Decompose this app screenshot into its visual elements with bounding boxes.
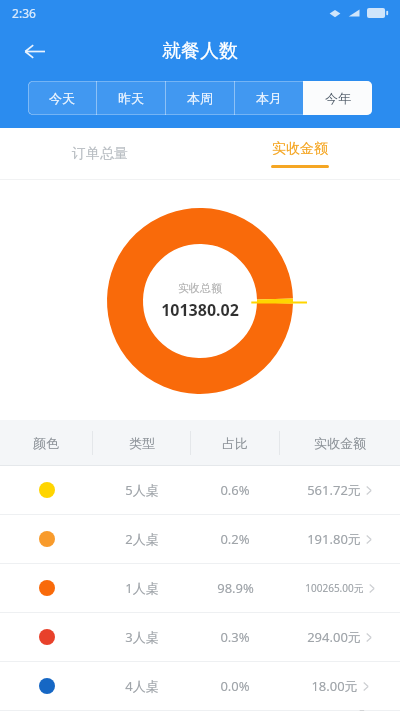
staticText: 3人桌 xyxy=(125,628,159,646)
button[interactable]: 2人桌 xyxy=(0,515,400,563)
button[interactable]: 今年 xyxy=(303,81,372,115)
staticText: 2:36 xyxy=(12,5,36,21)
staticText: 18.00元 xyxy=(311,677,358,695)
staticText: 2人桌 xyxy=(125,530,159,548)
staticText: 0.3% xyxy=(220,628,250,646)
button[interactable]: 3人桌 xyxy=(0,613,400,661)
button[interactable]: 实收金额 xyxy=(200,128,400,180)
staticText: 今天 xyxy=(49,90,75,106)
staticText: 类型 xyxy=(129,435,155,451)
staticText: 实收总额 xyxy=(178,281,222,295)
staticText: 0.0% xyxy=(220,677,250,695)
button[interactable]: Back xyxy=(16,33,52,69)
button[interactable]: 5人桌 xyxy=(0,466,400,514)
staticText: 昨天 xyxy=(118,90,144,106)
button[interactable]: 今天 xyxy=(28,81,96,115)
button[interactable]: 本月 xyxy=(234,81,303,115)
staticText: 561.72元 xyxy=(307,481,361,499)
staticText: 5人桌 xyxy=(125,481,159,499)
staticText: 就餐人数 xyxy=(162,39,238,63)
button[interactable]: 1人桌 xyxy=(0,564,400,612)
staticText: 0.6% xyxy=(220,481,250,499)
staticText: 占比 xyxy=(222,435,248,451)
staticText: 191.80元 xyxy=(307,530,361,548)
staticText: 0.2% xyxy=(220,530,250,548)
staticText: 颜色 xyxy=(33,435,59,451)
staticText: 本周 xyxy=(187,90,213,106)
staticText: 98.9% xyxy=(217,579,254,597)
staticText: 1人桌 xyxy=(125,579,159,597)
staticText: 4人桌 xyxy=(125,677,159,695)
staticText: 实收金额 xyxy=(314,435,366,451)
button[interactable]: 订单总量 xyxy=(0,128,200,180)
staticText: 100265.00元 xyxy=(305,581,364,595)
button[interactable]: 本周 xyxy=(165,81,234,115)
staticText: 今年 xyxy=(325,90,351,106)
staticText: 订单总量 xyxy=(72,145,128,163)
staticText: 本月 xyxy=(256,90,282,106)
staticText: 实收金额 xyxy=(272,140,328,158)
staticText: 294.00元 xyxy=(307,628,361,646)
button[interactable]: 昨天 xyxy=(96,81,165,115)
staticText: 101380.02 xyxy=(161,299,239,321)
button[interactable]: 4人桌 xyxy=(0,662,400,710)
